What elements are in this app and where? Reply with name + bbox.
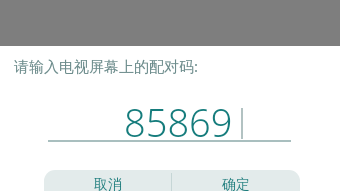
button[interactable]: 取消	[44, 170, 172, 191]
button[interactable]: 确定	[172, 170, 300, 191]
staticText: 85869	[124, 96, 233, 148]
staticText: 请输入电视屏幕上的配对码:	[14, 56, 199, 76]
staticText: 确定	[222, 176, 250, 191]
staticText: 取消	[94, 176, 122, 191]
